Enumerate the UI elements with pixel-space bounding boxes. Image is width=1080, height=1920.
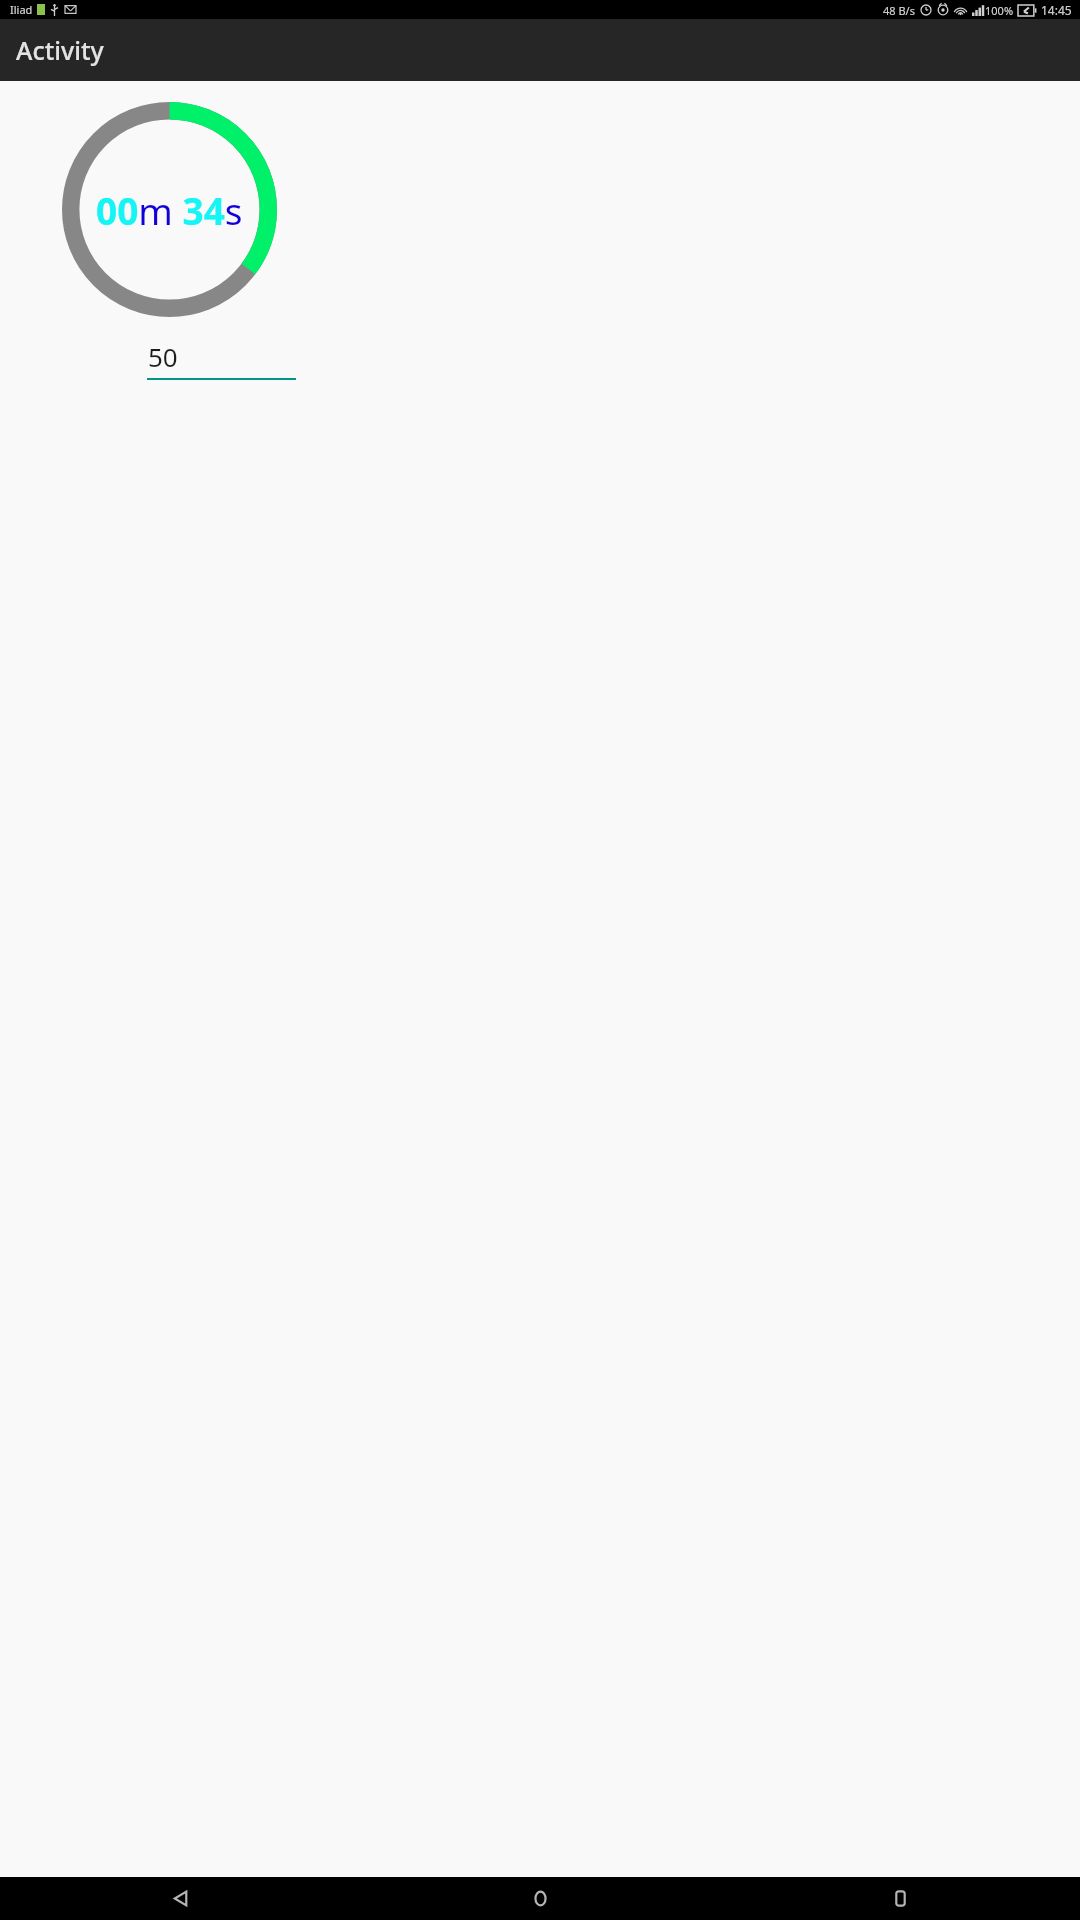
button[interactable]: Back — [0, 1877, 360, 1920]
staticText: 14:45 — [1041, 2, 1072, 18]
staticText: 100% — [985, 3, 1014, 18]
staticText: Iliad — [10, 2, 33, 17]
staticText: 50 — [148, 339, 178, 374]
staticText: 48 B/s — [883, 3, 915, 18]
button[interactable]: Recent apps — [720, 1877, 1080, 1920]
button[interactable]: Home — [360, 1877, 720, 1920]
staticText: 00m 34s — [96, 185, 243, 235]
button[interactable]: 50 — [147, 339, 296, 380]
staticText: Activity — [16, 33, 104, 67]
